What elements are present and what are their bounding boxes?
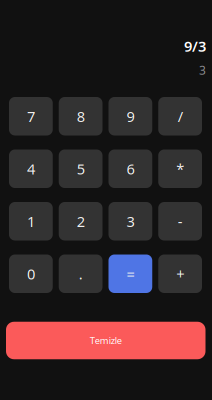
staticText: 3 [126,211,134,231]
staticText: = [126,264,134,283]
staticText: 1 [27,211,35,231]
button[interactable]: + [158,254,202,293]
button[interactable]: 8 [59,97,103,135]
button[interactable]: 7 [9,97,53,135]
button[interactable]: - [158,202,202,240]
staticText: / [178,106,183,126]
staticText: 0 [27,264,35,283]
staticText: 2 [77,211,85,231]
button[interactable]: 5 [59,149,103,188]
button[interactable]: 6 [108,149,152,188]
staticText: 7 [27,106,35,126]
staticText: 5 [77,159,85,178]
button[interactable]: . [59,254,103,293]
staticText: 9 [126,106,134,126]
button[interactable]: 3 [108,202,152,240]
button[interactable]: 9 [108,97,152,135]
button[interactable]: 1 [9,202,53,240]
staticText: + [176,264,184,283]
button[interactable]: Temizle [6,322,205,359]
button[interactable]: * [158,149,202,188]
staticText: . [79,264,83,283]
staticText: Temizle [90,334,122,347]
staticText: - [178,211,183,231]
button[interactable]: = [108,254,152,293]
staticText: 8 [77,106,85,126]
button[interactable]: 2 [59,202,103,240]
staticText: 4 [27,159,35,178]
staticText: 6 [126,159,134,178]
staticText: * [176,159,184,178]
staticText: 3 [199,62,206,78]
button[interactable]: / [158,97,202,135]
button[interactable]: 0 [9,254,53,293]
button[interactable]: 4 [9,149,53,188]
staticText: 9/3 [184,36,206,56]
